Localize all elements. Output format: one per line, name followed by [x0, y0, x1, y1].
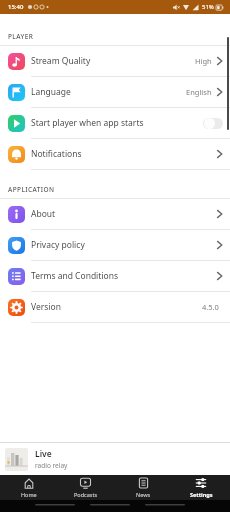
- button[interactable]: Home: [0, 475, 57, 500]
- staticText: Live: [35, 448, 52, 460]
- staticText: Notifications: [31, 148, 82, 160]
- button[interactable]: Terms and Conditions: [0, 261, 230, 292]
- staticText: News: [136, 491, 151, 498]
- button[interactable]: Notifications: [0, 139, 230, 170]
- staticText: Podcasts: [74, 491, 98, 498]
- staticText: Language: [31, 86, 71, 98]
- staticText: Settings: [190, 491, 213, 498]
- staticText: 15:40: [8, 3, 24, 11]
- staticText: 4.5.0: [202, 302, 219, 312]
- button[interactable]: Version: [0, 292, 230, 323]
- staticText: APPLICATION: [8, 185, 55, 194]
- staticText: Stream Quality: [31, 55, 91, 67]
- staticText: High: [195, 56, 212, 66]
- staticText: PLAYER: [8, 32, 34, 41]
- staticText: English: [186, 87, 212, 97]
- staticText: Terms and Conditions: [31, 270, 119, 282]
- staticText: Privacy policy: [31, 239, 85, 251]
- button[interactable]: Settings: [172, 475, 230, 500]
- staticText: 51%: [202, 3, 214, 11]
- button[interactable]: Start player when app starts: [0, 108, 230, 139]
- staticText: Start player when app starts: [31, 117, 144, 129]
- button[interactable]: Podcasts: [57, 475, 114, 500]
- button[interactable]: Live: [0, 442, 230, 475]
- staticText: Home: [21, 491, 37, 498]
- button[interactable]: Privacy policy: [0, 230, 230, 261]
- staticText: radio relay: [35, 461, 68, 470]
- button[interactable]: About: [0, 199, 230, 230]
- staticText: Version: [31, 301, 61, 313]
- button[interactable]: Language: [0, 77, 230, 108]
- button[interactable]: News: [114, 475, 172, 500]
- staticText: About: [31, 208, 56, 220]
- button[interactable]: Stream Quality: [0, 46, 230, 77]
